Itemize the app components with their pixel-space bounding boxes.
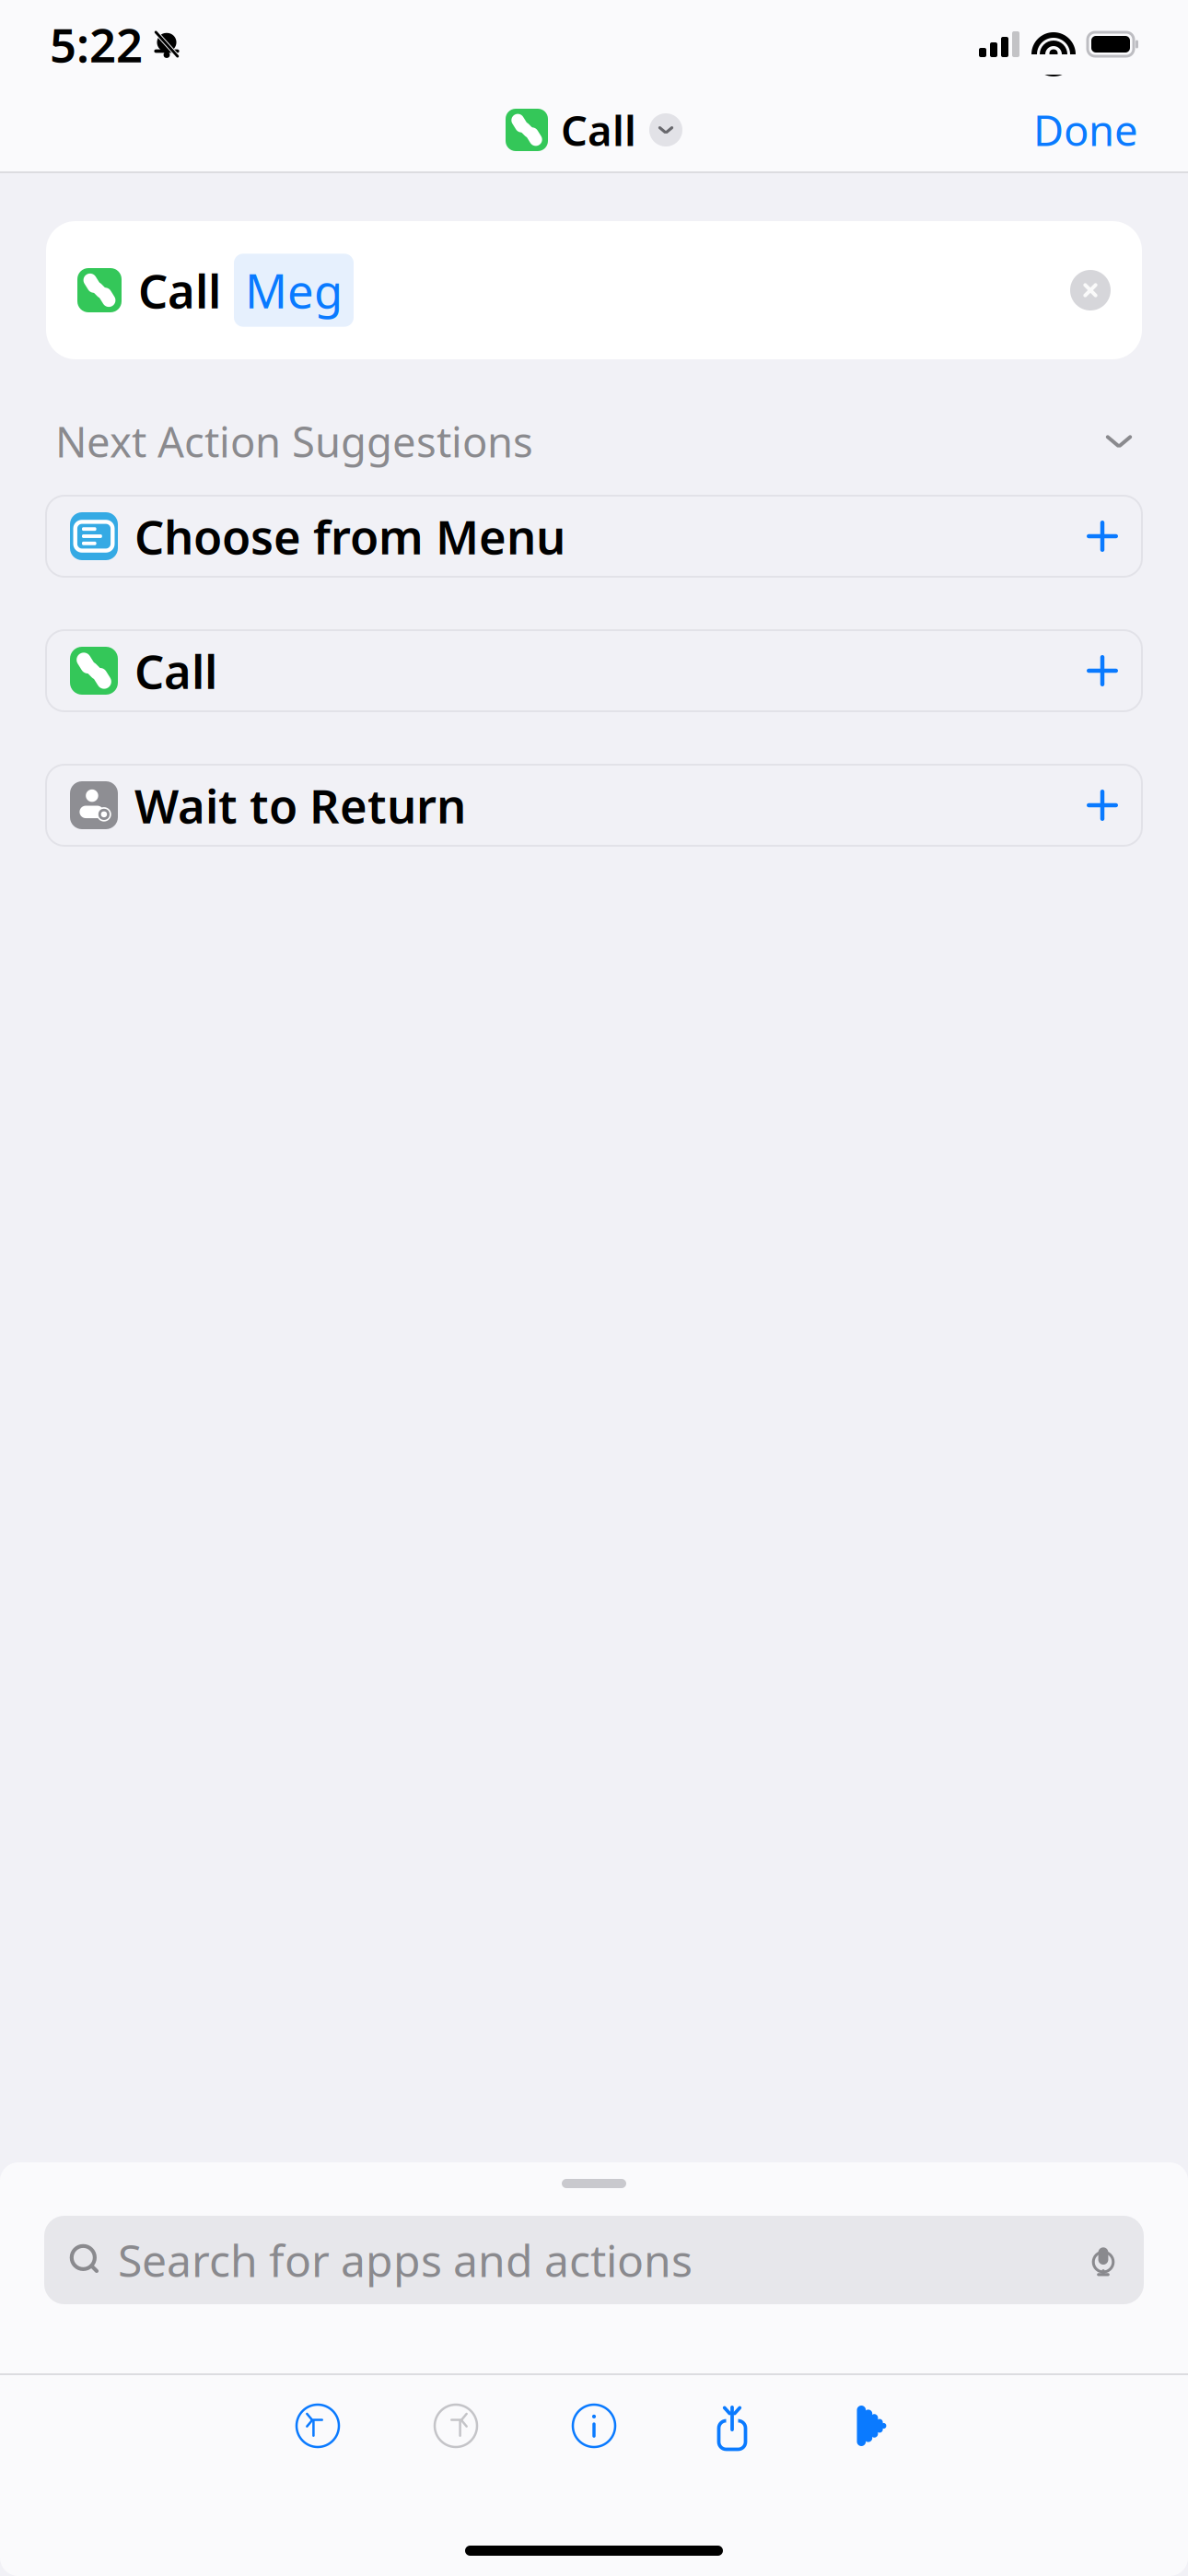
button[interactable]: Next Action Suggestions <box>0 409 1188 474</box>
button[interactable]: Run shortcut <box>801 2382 939 2470</box>
staticText: Search for apps and actions <box>118 2231 693 2289</box>
staticText: Choose from Menu <box>134 505 565 567</box>
button[interactable]: Share <box>663 2382 801 2470</box>
staticText: Call <box>134 640 217 702</box>
button[interactable]: Call <box>46 630 1142 711</box>
button[interactable]: Undo <box>249 2382 387 2470</box>
staticText: Next Action Suggestions <box>55 414 533 469</box>
button[interactable]: Done <box>1024 95 1147 165</box>
staticText: Call <box>138 259 221 321</box>
button[interactable]: Info <box>525 2382 663 2470</box>
staticText: Wait to Return <box>134 774 466 836</box>
staticText: Call <box>561 102 636 158</box>
button[interactable]: Call <box>46 221 1142 359</box>
button[interactable]: Redo <box>387 2382 525 2470</box>
button[interactable]: Choose from Menu <box>46 496 1142 577</box>
staticText: Meg <box>245 259 343 321</box>
button[interactable]: Call <box>506 102 682 158</box>
staticText: 5:22 <box>50 13 143 75</box>
button[interactable]: Search for apps and actions <box>44 2216 1144 2304</box>
button[interactable]: Wait to Return <box>46 765 1142 846</box>
staticText: Done <box>1033 102 1138 158</box>
